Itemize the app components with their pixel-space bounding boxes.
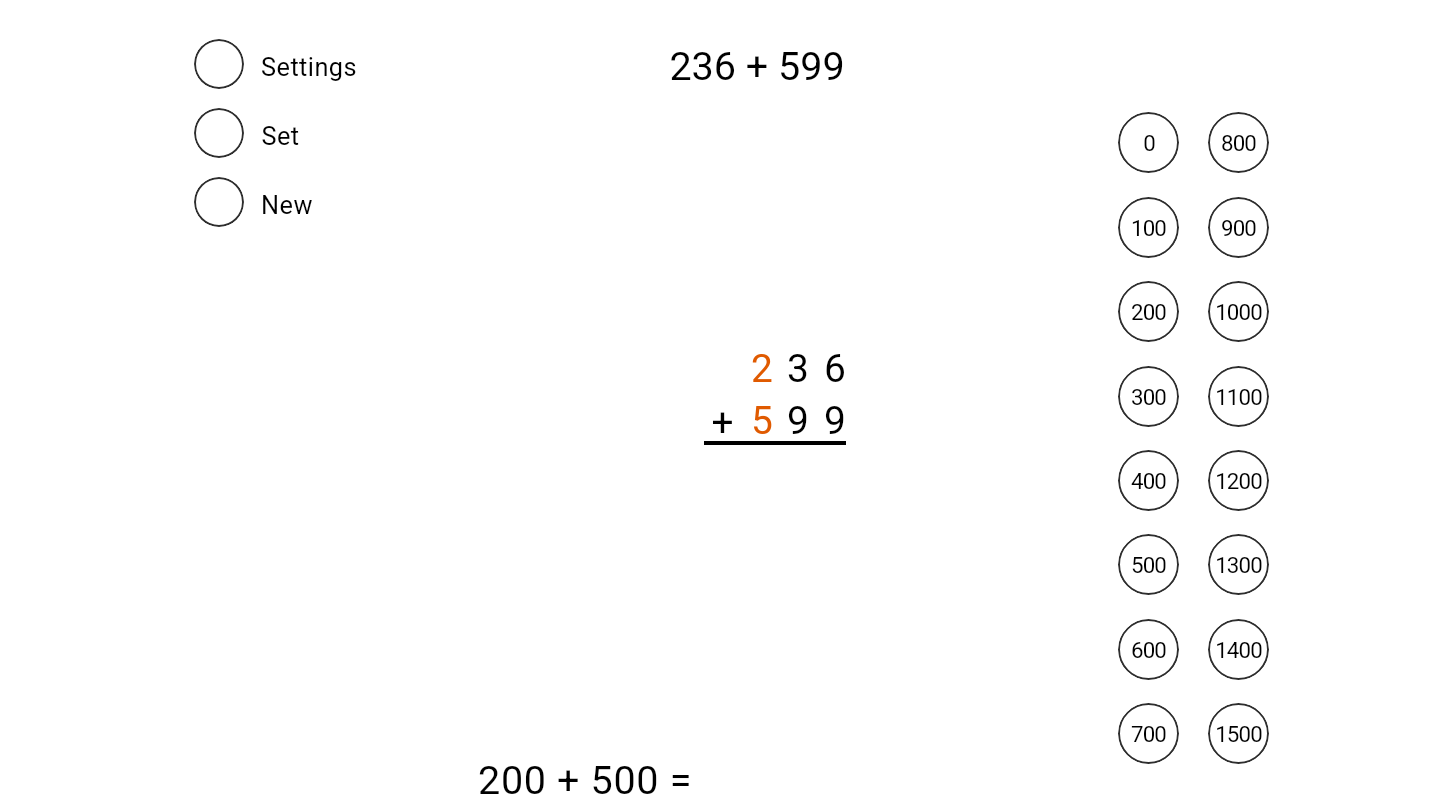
button[interactable]: 1200 [1208,450,1269,511]
staticText: 1500 [1215,721,1262,747]
button[interactable]: 800 [1208,112,1269,173]
staticText: 6 [824,346,846,392]
button[interactable]: New [194,177,312,227]
button[interactable]: 300 [1118,366,1179,427]
staticText: 900 [1221,215,1256,241]
staticText: 800 [1221,130,1256,156]
staticText: + [711,400,734,446]
staticText: 200 + 500 = [478,757,692,803]
staticText: 400 [1131,468,1166,494]
button[interactable]: 1400 [1208,619,1269,680]
staticText: 2 [751,346,773,392]
button[interactable]: 1100 [1208,366,1269,427]
button[interactable]: Set [194,108,299,158]
button[interactable]: 500 [1118,534,1179,595]
staticText: 3 [787,346,809,392]
staticText: 500 [1131,552,1166,578]
staticText: 1000 [1215,299,1262,325]
staticText: 9 [787,398,809,444]
button[interactable]: 1300 [1208,534,1269,595]
button[interactable]: 600 [1118,619,1179,680]
button[interactable]: 0 [1118,112,1179,173]
button[interactable]: Settings [194,39,356,89]
button[interactable]: 400 [1118,450,1179,511]
staticText: 300 [1131,384,1166,410]
button[interactable]: 700 [1118,703,1179,764]
staticText: 600 [1131,637,1166,663]
staticText: Set [261,122,300,152]
button[interactable]: 900 [1208,197,1269,258]
staticText: 1100 [1215,384,1262,410]
button[interactable]: 1000 [1208,281,1269,342]
staticText: 1300 [1215,552,1262,578]
staticText: 100 [1131,215,1166,241]
button[interactable]: 1500 [1208,703,1269,764]
staticText: 9 [824,398,846,444]
staticText: 0 [1143,130,1155,156]
staticText: 1200 [1215,468,1262,494]
staticText: 700 [1131,721,1166,747]
staticText: 200 [1131,299,1166,325]
button[interactable]: 200 [1118,281,1179,342]
staticText: 1400 [1215,637,1262,663]
button[interactable]: 100 [1118,197,1179,258]
staticText: 5 [751,398,773,444]
staticText: New [261,191,313,221]
staticText: Settings [261,53,357,83]
staticText: 236 + 599 [669,43,845,89]
